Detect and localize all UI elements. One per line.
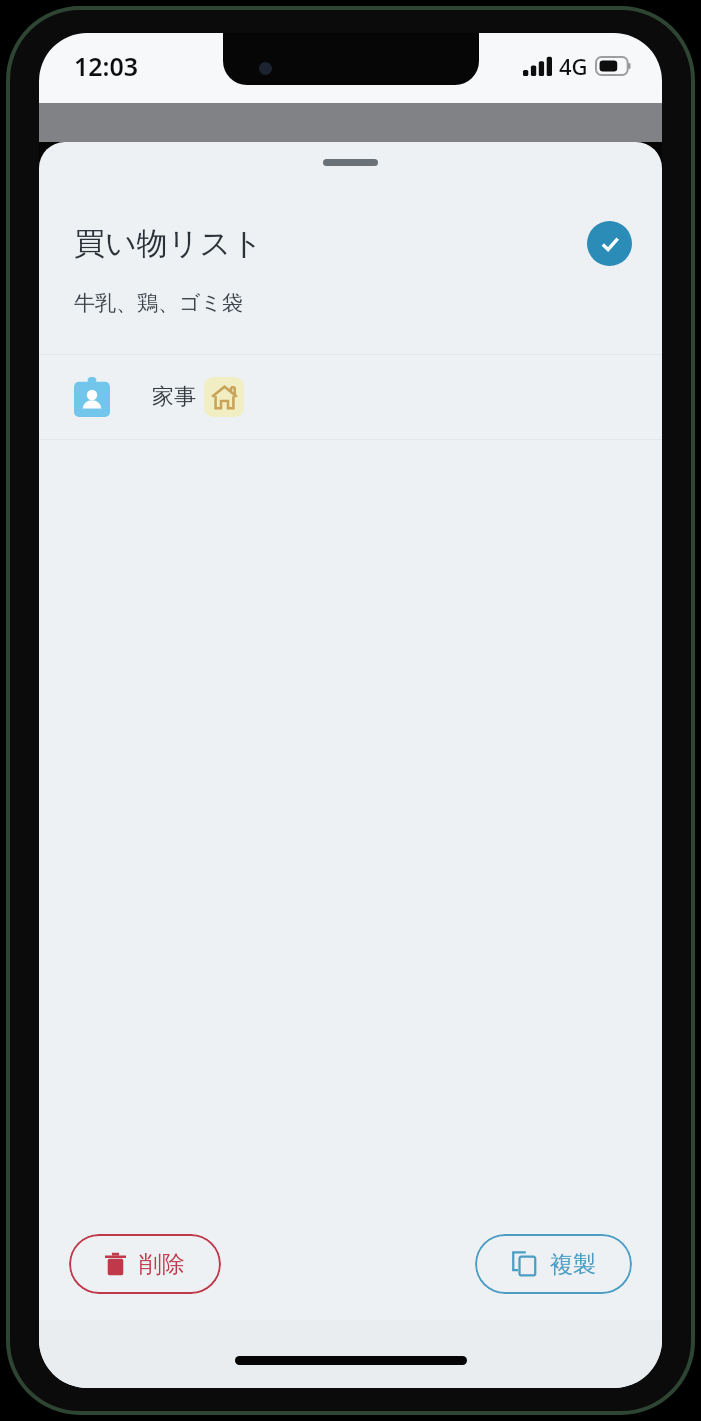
staticText: 12:03: [74, 49, 139, 83]
staticText: 削除: [139, 1250, 185, 1279]
button[interactable]: 削除: [69, 1234, 221, 1294]
staticText: 家事: [152, 383, 196, 411]
button[interactable]: 家事: [39, 355, 662, 439]
staticText: 買い物リスト: [74, 224, 587, 263]
staticText: 牛乳、鶏、ゴミ袋: [74, 290, 243, 316]
button[interactable]: Completed: [587, 221, 632, 266]
button[interactable]: 複製: [475, 1234, 632, 1294]
staticText: 複製: [550, 1250, 596, 1279]
button[interactable]: 買い物リスト: [39, 179, 662, 266]
staticText: 4G: [559, 51, 588, 81]
